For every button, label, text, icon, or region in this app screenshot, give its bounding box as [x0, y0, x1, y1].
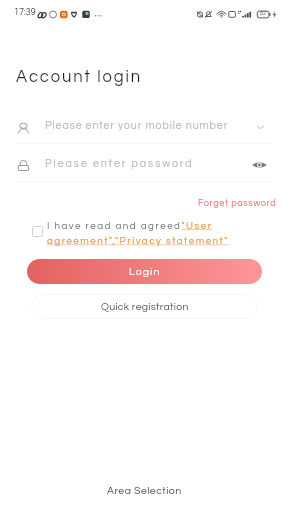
staticText: I have read and agreed"User agreement","… — [47, 221, 263, 246]
button[interactable] — [18, 148, 272, 181]
staticText: Account login — [16, 68, 143, 85]
staticText: 17:39 — [14, 8, 36, 17]
button[interactable]: Area Selection — [107, 485, 182, 496]
button[interactable]: Show password — [251, 157, 267, 173]
button[interactable]: Expand — [253, 120, 267, 134]
button[interactable]: I have read and agreed"User agreement","… — [32, 221, 248, 246]
button[interactable]: Quick registration — [31, 294, 258, 319]
staticText: Quick registration — [101, 301, 189, 312]
staticText: Area Selection — [107, 485, 182, 496]
staticText: Please enter your mobile number — [45, 120, 229, 131]
button[interactable]: Login — [27, 259, 262, 284]
staticText: Please enter password — [45, 158, 194, 169]
staticText: Login — [129, 266, 161, 277]
staticText: Forget password — [198, 198, 277, 207]
staticText: 82 — [260, 10, 267, 16]
button[interactable] — [18, 110, 272, 143]
button[interactable]: Forget password — [198, 198, 277, 207]
